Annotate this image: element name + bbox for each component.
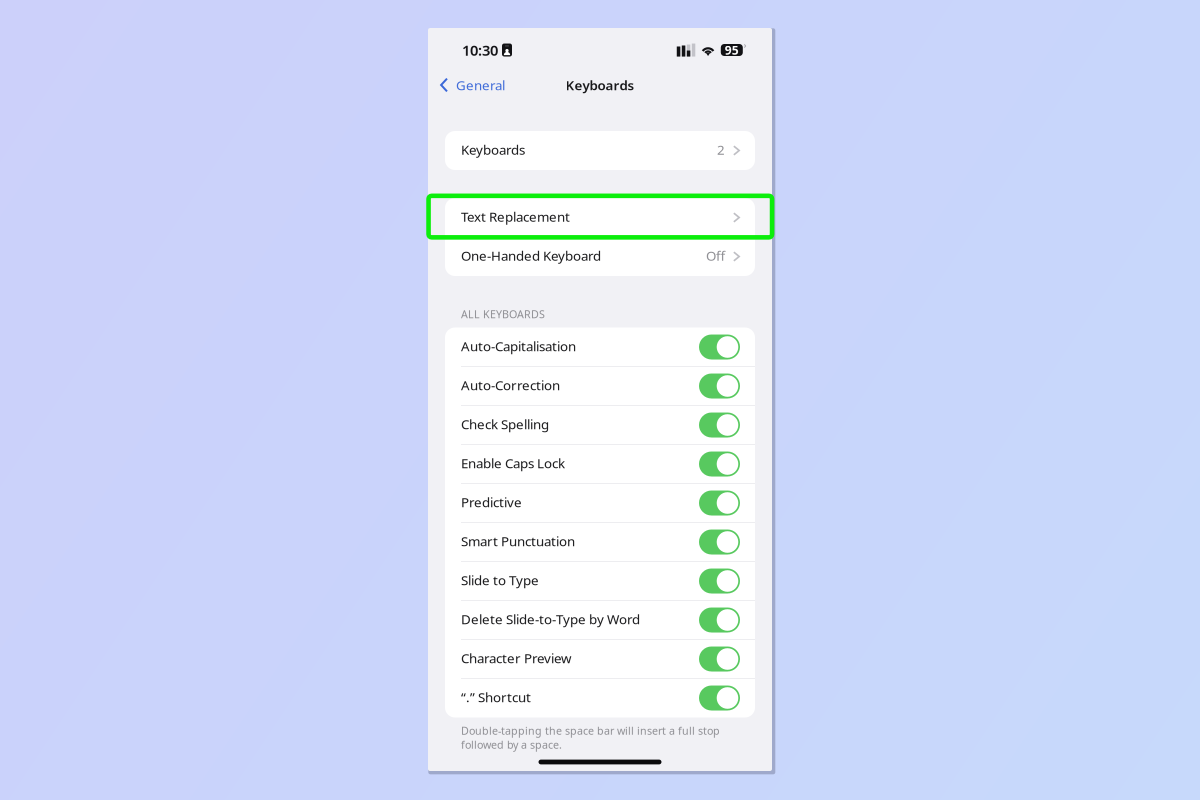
staticText: Check Spelling [461, 415, 549, 433]
staticText: Delete Slide-to-Type by Word [461, 610, 640, 628]
button[interactable]: Check Spelling [445, 405, 755, 444]
staticText: Character Preview [461, 649, 571, 667]
staticText: Text Replacement [461, 208, 570, 225]
button[interactable]: Keyboards [445, 131, 755, 170]
staticText: Off [706, 247, 725, 264]
button[interactable]: One-Handed Keyboard [445, 237, 755, 276]
button[interactable]: General [428, 70, 515, 100]
button[interactable]: Character Preview [445, 639, 755, 678]
button[interactable]: Delete Slide-to-Type by Word [445, 600, 755, 639]
staticText: “.” Shortcut [461, 688, 531, 706]
button[interactable]: Slide to Type [445, 561, 755, 600]
staticText: Double-tapping the space bar will insert… [461, 723, 720, 738]
staticText: 10:30 [462, 40, 498, 60]
staticText: One-Handed Keyboard [461, 247, 601, 264]
button[interactable]: Predictive [445, 483, 755, 522]
button[interactable]: Auto-Capitalisation [445, 327, 755, 366]
button[interactable]: Enable Caps Lock [445, 444, 755, 483]
staticText: General [456, 76, 505, 94]
button[interactable]: Text Replacement [445, 198, 755, 237]
staticText: Keyboards [461, 141, 525, 158]
staticText: Smart Punctuation [461, 532, 575, 550]
staticText: Enable Caps Lock [461, 454, 565, 472]
staticText: Predictive [461, 493, 522, 511]
staticText: ALL KEYBOARDS [461, 307, 545, 321]
staticText: 95 [725, 42, 739, 58]
staticText: Keyboards [565, 76, 634, 94]
button[interactable]: Auto-Correction [445, 366, 755, 405]
staticText: 2 [717, 141, 725, 158]
staticText: Slide to Type [461, 571, 539, 589]
button[interactable]: Smart Punctuation [445, 522, 755, 561]
button[interactable]: “.” Shortcut [445, 678, 755, 717]
staticText: Auto-Capitalisation [461, 337, 576, 355]
staticText: Auto-Correction [461, 376, 560, 394]
staticText: followed by a space. [461, 737, 562, 752]
